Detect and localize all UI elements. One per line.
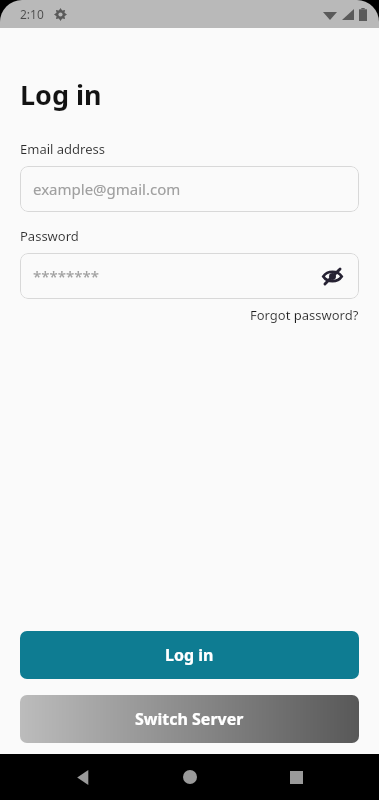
staticText: ******** [33, 266, 100, 286]
button[interactable]: Back [59, 754, 107, 800]
staticText: Log in [165, 644, 214, 666]
button[interactable]: Forgot password? [20, 306, 359, 324]
button[interactable]: ******** [20, 253, 359, 299]
button[interactable]: Show password [319, 263, 345, 289]
staticText: Password [20, 227, 79, 245]
button[interactable]: Home [166, 754, 214, 800]
button[interactable]: Recent apps [272, 754, 320, 800]
staticText: 2:10 [20, 6, 44, 22]
staticText: Log in [20, 76, 102, 113]
staticText: Forgot password? [250, 306, 359, 324]
staticText: example@gmail.com [33, 179, 181, 199]
staticText: Email address [20, 140, 105, 158]
button[interactable]: Log in [20, 631, 359, 679]
button[interactable]: example@gmail.com [20, 166, 359, 212]
button[interactable]: Switch Server [20, 695, 359, 743]
staticText: Switch Server [135, 708, 244, 730]
